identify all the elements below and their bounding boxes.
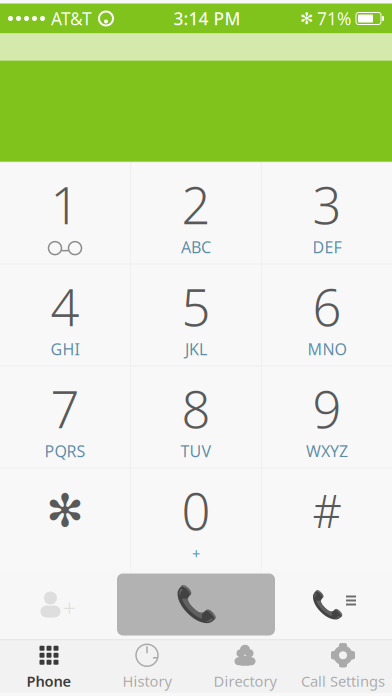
staticText: MNO: [307, 338, 346, 360]
staticText: DEF: [312, 236, 341, 258]
staticText: TUV: [180, 440, 211, 462]
staticText: ABC: [181, 236, 211, 258]
staticText: ✻: [46, 485, 84, 536]
button[interactable]: Directory: [196, 640, 294, 692]
button[interactable]: Add contact: [0, 569, 117, 639]
staticText: AT&T: [51, 7, 92, 30]
button[interactable]: #: [262, 468, 392, 569]
staticText: 71%: [317, 7, 351, 30]
button[interactable]: 4: [0, 264, 130, 365]
button[interactable]: 8: [131, 366, 261, 467]
button[interactable]: 7: [0, 366, 130, 467]
staticText: Call Settings: [301, 671, 385, 691]
staticText: +: [192, 544, 200, 563]
staticText: 3:14 PM: [173, 7, 240, 30]
button[interactable]: History: [98, 640, 196, 692]
button[interactable]: Phone: [0, 640, 98, 692]
staticText: +: [62, 592, 76, 623]
staticText: 📞: [311, 589, 344, 620]
button[interactable]: Call: [117, 573, 275, 635]
staticText: 7: [50, 375, 79, 442]
staticText: PQRS: [44, 440, 85, 462]
button[interactable]: 1: [0, 162, 130, 263]
button[interactable]: 2: [131, 162, 261, 263]
staticText: 0: [181, 477, 210, 544]
staticText: 3: [312, 171, 341, 238]
staticText: 4: [50, 273, 79, 340]
staticText: 9: [312, 375, 341, 442]
staticText: 5: [181, 273, 210, 340]
staticText: 2: [181, 171, 210, 238]
staticText: ✻: [300, 9, 313, 28]
button[interactable]: Call log: [275, 569, 392, 639]
staticText: 6: [312, 273, 341, 340]
staticText: #: [312, 480, 341, 541]
staticText: JKL: [185, 338, 207, 360]
staticText: 1: [50, 171, 79, 238]
button[interactable]: 9: [262, 366, 392, 467]
button[interactable]: 5: [131, 264, 261, 365]
staticText: 📞: [174, 585, 217, 624]
staticText: Phone: [26, 671, 71, 691]
staticText: Directory: [213, 671, 276, 691]
button[interactable]: 3: [262, 162, 392, 263]
button[interactable]: Call Settings: [294, 640, 392, 692]
button[interactable]: 0: [131, 468, 261, 569]
button[interactable]: ✻: [0, 468, 130, 569]
button[interactable]: 6: [262, 264, 392, 365]
staticText: WXYZ: [306, 440, 348, 462]
staticText: GHI: [50, 338, 79, 360]
staticText: History: [122, 671, 171, 691]
staticText: 8: [181, 375, 210, 442]
